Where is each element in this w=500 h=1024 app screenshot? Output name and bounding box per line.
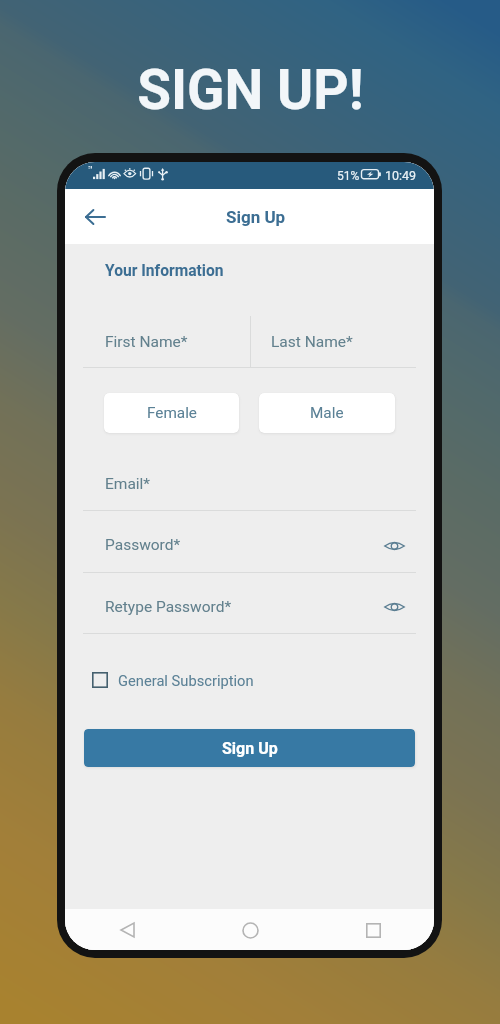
- staticText: Your Information: [105, 262, 224, 280]
- button[interactable]: Recents: [355, 912, 391, 948]
- staticText: Last Name*: [271, 333, 353, 351]
- button[interactable]: Home: [232, 912, 268, 948]
- staticText: Retype Password*: [105, 598, 232, 616]
- staticText: Sign Up: [222, 739, 278, 758]
- button[interactable]: Show password: [376, 528, 412, 564]
- staticText: Email*: [105, 475, 151, 493]
- staticText: General Subscription: [118, 672, 254, 689]
- button[interactable]: General Subscription: [92, 665, 254, 695]
- button[interactable]: Female: [104, 393, 239, 433]
- button[interactable]: Back: [109, 912, 145, 948]
- staticText: Sign Up: [226, 207, 286, 227]
- staticText: First Name*: [105, 333, 188, 351]
- staticText: 10:49: [385, 168, 417, 183]
- staticText: Password*: [105, 536, 181, 554]
- staticText: SIGN UP!: [137, 58, 364, 122]
- staticText: Female: [147, 404, 197, 422]
- button[interactable]: Back: [75, 197, 115, 237]
- button[interactable]: Sign Up: [84, 729, 415, 767]
- button[interactable]: Male: [259, 393, 395, 433]
- button[interactable]: Show password: [376, 589, 412, 625]
- staticText: Male: [310, 404, 344, 422]
- staticText: 51%: [337, 169, 360, 183]
